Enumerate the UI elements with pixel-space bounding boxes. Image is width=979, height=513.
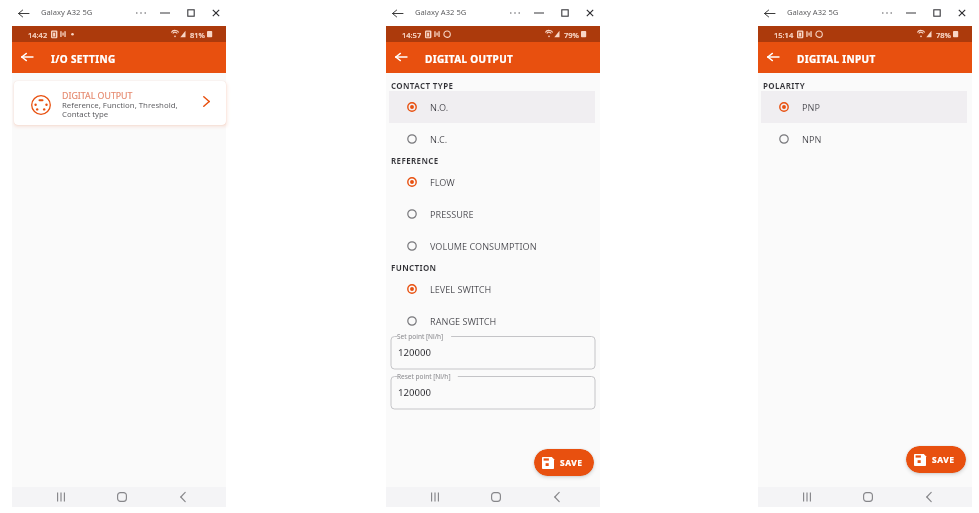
button[interactable]: N.O. — [389, 91, 595, 123]
button[interactable]: Navigate up — [17, 47, 37, 67]
staticText: CONTACT TYPE — [391, 80, 454, 91]
button[interactable]: Recents — [785, 487, 829, 507]
staticText: LEVEL SWITCH — [430, 283, 492, 295]
staticText: FUNCTION — [391, 262, 437, 273]
button[interactable]: Minimize — [156, 4, 174, 22]
staticText: Galaxy A32 5G — [41, 7, 93, 17]
staticText: 120000 — [398, 386, 431, 399]
staticText: Set point [Nl/h] — [397, 332, 444, 341]
button[interactable]: LEVEL SWITCH — [389, 273, 595, 305]
button[interactable]: RANGE SWITCH — [389, 305, 595, 337]
staticText: 14:57 — [402, 30, 422, 40]
button[interactable]: Close — [953, 4, 971, 22]
button[interactable]: Recents — [39, 487, 83, 507]
button[interactable]: DIGITAL OUTPUT — [14, 81, 226, 125]
button[interactable]: SAVE — [906, 446, 966, 473]
button[interactable]: Close — [207, 4, 225, 22]
staticText: 78% — [936, 30, 951, 40]
button[interactable]: Recents — [413, 487, 457, 507]
button[interactable]: Minimize — [902, 4, 920, 22]
staticText: 14:42 — [28, 30, 48, 40]
button[interactable]: Navigate up — [391, 47, 411, 67]
staticText: REFERENCE — [391, 155, 439, 166]
staticText: DIGITAL OUTPUT — [62, 90, 133, 102]
button[interactable]: PRESSURE — [389, 198, 595, 230]
button[interactable]: More options — [132, 4, 150, 22]
staticText: I/O SETTING — [51, 52, 116, 66]
staticText: 120000 — [398, 346, 431, 359]
staticText: Reset point [Nl/h] — [397, 372, 451, 381]
button[interactable]: N.C. — [389, 123, 595, 155]
button[interactable]: NPN — [761, 123, 967, 155]
staticText: FLOW — [430, 176, 455, 188]
button[interactable]: SAVE — [534, 449, 594, 476]
staticText: SAVE — [560, 457, 583, 468]
staticText: DIGITAL OUTPUT — [425, 52, 514, 66]
button[interactable]: Close — [581, 4, 599, 22]
button[interactable]: PNP — [761, 91, 967, 123]
button[interactable]: Back — [387, 3, 407, 23]
staticText: RANGE SWITCH — [430, 315, 497, 327]
button[interactable]: Back — [907, 487, 951, 507]
staticText: Galaxy A32 5G — [787, 7, 839, 17]
button[interactable]: Maximize — [928, 4, 946, 22]
staticText: PRESSURE — [430, 208, 474, 220]
staticText: 15:14 — [774, 30, 794, 40]
staticText: Galaxy A32 5G — [415, 7, 467, 17]
button[interactable]: Back — [13, 3, 33, 23]
button[interactable]: More options — [506, 4, 524, 22]
button[interactable]: VOLUME CONSUMPTION — [389, 230, 595, 262]
button[interactable]: Back — [161, 487, 205, 507]
staticText: Reference, Function, Threshold, Contact … — [62, 100, 178, 119]
staticText: PNP — [802, 101, 820, 113]
button[interactable]: Home — [474, 487, 518, 507]
staticText: NPN — [802, 133, 822, 145]
button[interactable]: Back — [759, 3, 779, 23]
staticText: N.O. — [430, 101, 449, 113]
staticText: 79% — [564, 30, 579, 40]
button[interactable]: Back — [535, 487, 579, 507]
button[interactable]: FLOW — [389, 166, 595, 198]
staticText: SAVE — [932, 454, 955, 465]
button[interactable]: Home — [100, 487, 144, 507]
button[interactable]: Minimize — [530, 4, 548, 22]
button[interactable]: More options — [878, 4, 896, 22]
staticText: POLARITY — [763, 80, 806, 91]
staticText: DIGITAL INPUT — [797, 52, 876, 66]
staticText: N.C. — [430, 133, 448, 145]
button[interactable]: Maximize — [182, 4, 200, 22]
staticText: VOLUME CONSUMPTION — [430, 240, 537, 252]
staticText: 81% — [190, 30, 205, 40]
button[interactable]: Navigate up — [763, 47, 783, 67]
button[interactable]: Home — [846, 487, 890, 507]
button[interactable]: Maximize — [556, 4, 574, 22]
